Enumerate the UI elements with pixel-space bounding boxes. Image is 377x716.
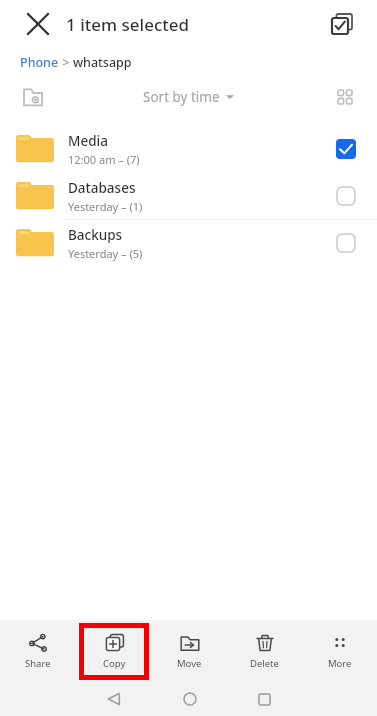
button[interactable]: Move	[152, 620, 227, 682]
button[interactable]: Copy	[84, 628, 144, 675]
button[interactable]: Share	[0, 620, 76, 682]
staticText: 12:00 am – (7)	[68, 152, 140, 167]
staticText: Yesterday – (1)	[68, 199, 143, 214]
button[interactable]: Grid view	[331, 83, 359, 111]
staticText: More	[328, 657, 352, 670]
button[interactable]: Backups	[0, 220, 377, 266]
staticText: Databases	[68, 179, 136, 197]
button[interactable]: Select all	[325, 7, 359, 41]
button[interactable]: Not selected	[331, 181, 361, 211]
button[interactable]: Back	[76, 682, 152, 716]
button[interactable]: Databases	[0, 173, 377, 219]
button[interactable]: Sort by time	[143, 88, 234, 106]
staticText: Copy	[103, 657, 126, 670]
button[interactable]: Recents	[227, 682, 302, 716]
staticText: Share	[25, 657, 51, 670]
staticText: Media	[68, 132, 108, 150]
button[interactable]: Home	[152, 682, 227, 716]
button[interactable]: Selected	[331, 134, 361, 164]
staticText: 1 item selected	[66, 13, 190, 36]
staticText: Yesterday – (5)	[68, 246, 143, 261]
staticText: >	[59, 54, 73, 71]
button[interactable]: Close	[20, 6, 56, 42]
staticText: Sort by time	[143, 88, 220, 106]
button[interactable]: Delete	[227, 620, 302, 682]
button[interactable]: whatsapp	[73, 54, 132, 71]
button[interactable]: New folder	[18, 82, 48, 112]
button[interactable]: Media	[0, 126, 377, 172]
button[interactable]: Phone	[20, 54, 59, 71]
button[interactable]: More	[302, 620, 377, 682]
staticText: Move	[177, 657, 202, 670]
staticText: Delete	[250, 657, 279, 670]
button[interactable]: Not selected	[331, 228, 361, 258]
staticText: Backups	[68, 226, 123, 244]
